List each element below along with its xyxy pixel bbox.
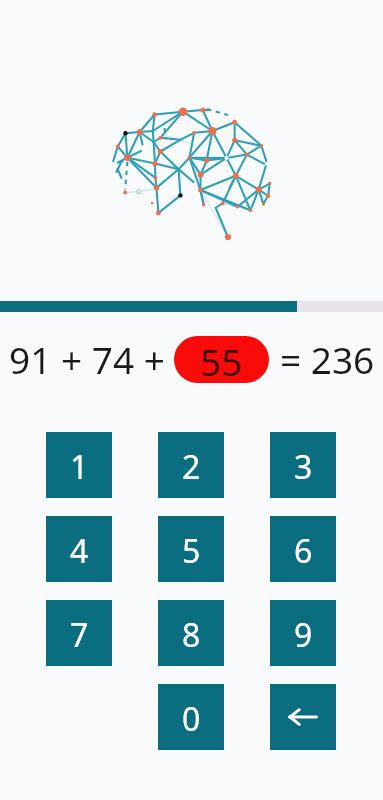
- button[interactable]: 7: [46, 600, 112, 666]
- button[interactable]: 3: [270, 432, 336, 498]
- staticText: 2: [182, 445, 201, 489]
- staticText: 6: [294, 529, 313, 573]
- button[interactable]: 55: [174, 336, 269, 383]
- staticText: 4: [70, 529, 89, 573]
- staticText: 91 + 74 +: [9, 334, 165, 384]
- button[interactable]: 1: [46, 432, 112, 498]
- button[interactable]: 6: [270, 516, 336, 582]
- staticText: 3: [294, 445, 313, 489]
- staticText: 55: [200, 336, 243, 383]
- staticText: = 236: [280, 334, 375, 384]
- button[interactable]: 5: [158, 516, 224, 582]
- button[interactable]: 4: [46, 516, 112, 582]
- button[interactable]: 2: [158, 432, 224, 498]
- staticText: 5: [182, 529, 201, 573]
- staticText: 9: [294, 613, 313, 657]
- button[interactable]: Backspace: [270, 684, 336, 750]
- staticText: 8: [182, 613, 201, 657]
- button[interactable]: 9: [270, 600, 336, 666]
- staticText: 1: [70, 445, 89, 489]
- button[interactable]: 0: [158, 684, 224, 750]
- staticText: 0: [182, 697, 201, 741]
- button[interactable]: 8: [158, 600, 224, 666]
- staticText: 7: [70, 613, 89, 657]
